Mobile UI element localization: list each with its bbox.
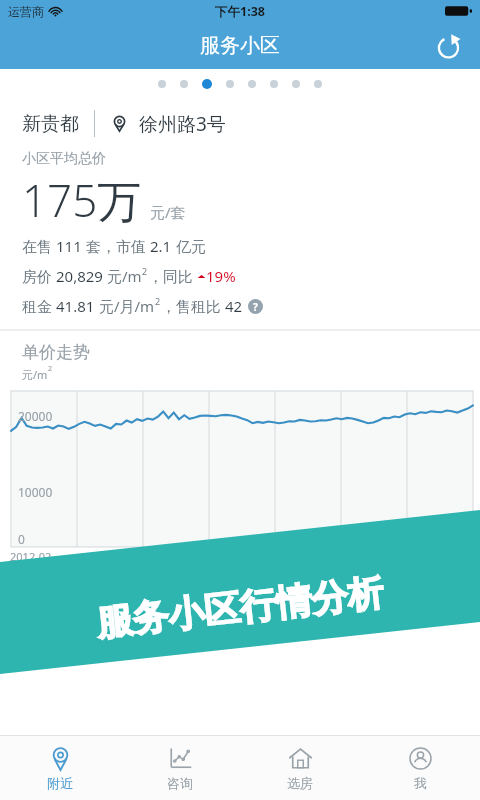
staticText: 我 [414,775,427,791]
staticText: 2012-02 [10,549,52,564]
button[interactable]: 我 [360,736,480,800]
button[interactable]: Page 8 [314,80,322,88]
staticText: 房价 [22,266,56,286]
staticText: 附近 [47,775,73,791]
button[interactable]: Page 6 [270,80,278,88]
button[interactable]: Page 4 [226,80,234,88]
button[interactable]: 附近 [0,736,120,800]
staticText: 2.1 [150,236,172,256]
staticText: 运营商 [8,4,44,19]
staticText: 选房 [287,775,313,791]
button[interactable]: Help [248,299,263,314]
staticText: 175万 [22,170,142,230]
button[interactable]: Page 2 [180,80,188,88]
staticText: 20000 [18,408,53,424]
button[interactable]: Refresh [428,26,468,66]
staticText: 111 [56,236,82,256]
staticText: 单价走势 [22,342,90,363]
staticText: 租金 [22,296,56,316]
staticText: 元/m [103,266,142,286]
staticText: 新贵都 [22,112,79,136]
staticText: 下午1:38 [215,3,265,20]
staticText: 元/月/m [95,296,155,316]
staticText: 套， [82,236,116,256]
staticText: 市值 [116,236,150,256]
staticText: 2 [155,295,161,307]
staticText: ，同比 [148,266,197,286]
staticText: 41.81 [56,296,95,316]
staticText: 42 [225,296,243,316]
button[interactable]: Page 1 [158,80,166,88]
button[interactable]: 咨询 [120,736,240,800]
staticText: 元/套 [150,202,186,222]
staticText: 亿元 [172,236,206,256]
staticText: 2 [48,364,53,374]
staticText: 小区平均总价 [22,150,106,168]
staticText: 0 [18,531,25,547]
staticText: 20,829 [56,266,103,286]
staticText: ? [253,300,258,314]
staticText: ，售租比 [161,296,225,316]
staticText: 徐州路3号 [139,111,226,137]
staticText: 19% [206,266,236,286]
staticText: 2 [142,265,148,277]
button[interactable]: Page 7 [292,80,300,88]
staticText: 2012-12 [80,549,122,564]
button[interactable]: Page 5 [248,80,256,88]
staticText: 服务小区 [200,33,280,58]
staticText: 元/m [22,367,48,382]
button[interactable]: Page 3 [202,79,212,89]
button[interactable]: 选房 [240,736,360,800]
staticText: 10000 [18,484,53,500]
staticText: 咨询 [167,775,193,791]
staticText: 服务小区行情分析 [94,570,386,645]
staticText: 在售 [22,236,56,256]
